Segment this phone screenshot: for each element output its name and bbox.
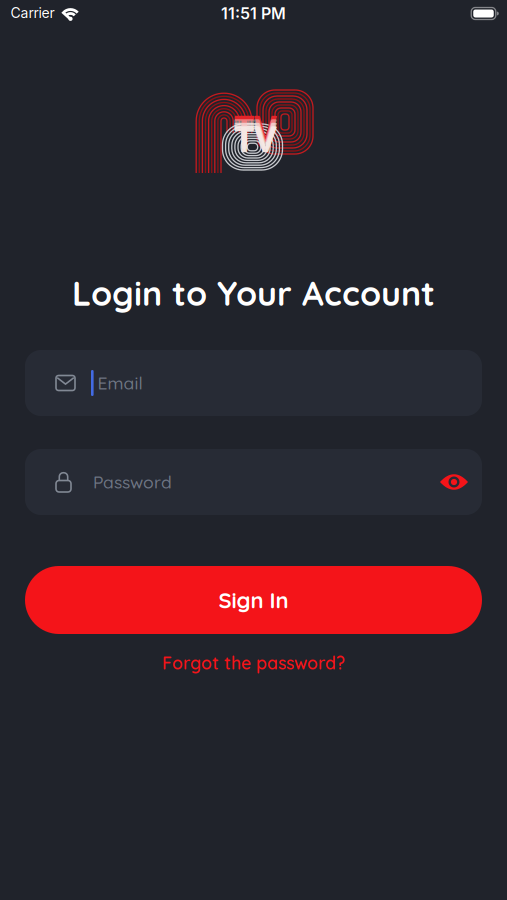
staticText: TV [234, 114, 277, 157]
staticText: Forgot the password? [162, 652, 345, 674]
button[interactable]: Email [25, 350, 482, 416]
staticText: TV [234, 107, 277, 150]
staticText: TV [234, 111, 277, 153]
staticText: TV [234, 118, 277, 160]
button[interactable]: Show password [440, 473, 468, 491]
button[interactable]: Forgot the password? [162, 652, 345, 674]
staticText: Carrier [10, 4, 54, 21]
button[interactable]: Password [25, 449, 482, 515]
staticText: 11:51 PM [221, 4, 286, 23]
staticText: Login to Your Account [72, 272, 435, 314]
staticText: Sign In [218, 586, 288, 614]
staticText: Password [93, 471, 172, 493]
staticText: Email [98, 372, 143, 394]
button[interactable]: Sign In [25, 566, 482, 634]
